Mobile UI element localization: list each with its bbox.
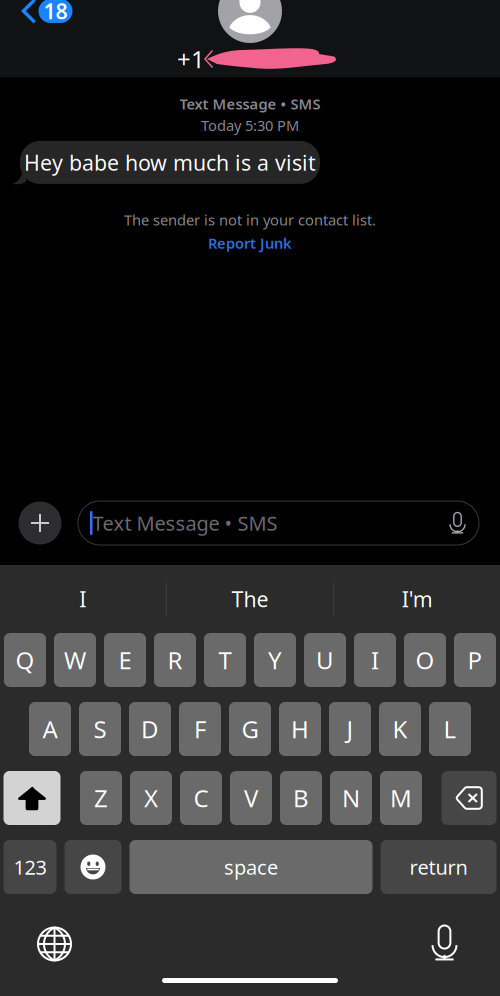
- staticText: Report Junk: [208, 233, 292, 253]
- button[interactable]: V: [230, 771, 272, 825]
- button[interactable]: I'm: [334, 565, 500, 633]
- button[interactable]: Text Message • SMS: [78, 501, 479, 545]
- staticText: The sender is not in your contact list.: [124, 210, 376, 229]
- staticText: Q: [15, 644, 34, 676]
- staticText: I: [371, 644, 379, 676]
- button[interactable]: C: [180, 771, 222, 825]
- button[interactable]: return: [380, 840, 496, 894]
- button[interactable]: Y: [254, 633, 296, 687]
- button[interactable]: F: [179, 702, 221, 756]
- staticText: R: [167, 644, 182, 676]
- button[interactable]: O: [404, 633, 446, 687]
- button[interactable]: I: [354, 633, 396, 687]
- staticText: 123: [13, 854, 46, 880]
- button[interactable]: Back, 18 unread messages: [21, 0, 72, 24]
- button[interactable]: K: [379, 702, 421, 756]
- button[interactable]: Report Junk: [208, 233, 292, 253]
- staticText: Z: [94, 782, 108, 814]
- staticText: A: [42, 713, 57, 745]
- staticText: G: [241, 713, 258, 745]
- button[interactable]: A: [29, 702, 71, 756]
- staticText: Today 5:30 PM: [201, 115, 299, 135]
- button[interactable]: H: [279, 702, 321, 756]
- staticText: Y: [268, 644, 282, 676]
- staticText: S: [93, 713, 106, 745]
- button[interactable]: Switch keyboard: [28, 917, 81, 970]
- button[interactable]: Emoji: [64, 840, 121, 894]
- button[interactable]: Dictate: [422, 915, 466, 970]
- button[interactable]: P: [454, 633, 496, 687]
- staticText: U: [316, 644, 334, 676]
- button[interactable]: space: [129, 840, 372, 894]
- button[interactable]: J: [329, 702, 371, 756]
- staticText: space: [224, 854, 278, 880]
- staticText: The: [231, 585, 268, 613]
- button[interactable]: U: [304, 633, 346, 687]
- staticText: Text Message • SMS: [92, 510, 277, 536]
- button[interactable]: Z: [80, 771, 122, 825]
- button[interactable]: M: [380, 771, 422, 825]
- button[interactable]: Shift: [3, 771, 60, 825]
- staticText: 18: [43, 0, 67, 25]
- staticText: I'm: [402, 585, 433, 613]
- staticText: I: [79, 585, 86, 613]
- button[interactable]: W: [54, 633, 96, 687]
- staticText: F: [194, 713, 206, 745]
- button[interactable]: E: [104, 633, 146, 687]
- staticText: return: [409, 854, 467, 880]
- staticText: Text Message • SMS: [179, 94, 320, 113]
- staticText: C: [193, 782, 208, 814]
- button[interactable]: T: [204, 633, 246, 687]
- button[interactable]: N: [330, 771, 372, 825]
- staticText: H: [291, 713, 309, 745]
- staticText: X: [144, 782, 158, 814]
- button[interactable]: B: [280, 771, 322, 825]
- button[interactable]: I: [0, 565, 166, 633]
- button[interactable]: Add attachment: [16, 499, 64, 547]
- staticText: K: [392, 713, 407, 745]
- button[interactable]: Q: [4, 633, 46, 687]
- staticText: O: [415, 644, 434, 676]
- button[interactable]: Delete: [441, 771, 496, 825]
- staticText: W: [64, 644, 86, 676]
- staticText: T: [218, 644, 231, 676]
- button[interactable]: G: [229, 702, 271, 756]
- staticText: E: [118, 644, 131, 676]
- button[interactable]: R: [154, 633, 196, 687]
- staticText: D: [141, 713, 159, 745]
- staticText: M: [390, 782, 412, 814]
- staticText: Hey babe how much is a visit: [24, 148, 316, 177]
- button[interactable]: L: [429, 702, 471, 756]
- staticText: P: [467, 644, 482, 676]
- staticText: J: [346, 713, 353, 745]
- button[interactable]: S: [79, 702, 121, 756]
- button[interactable]: 123: [3, 840, 56, 894]
- staticText: L: [443, 713, 456, 745]
- staticText: N: [342, 782, 360, 814]
- button[interactable]: The: [167, 565, 333, 633]
- staticText: +1: [177, 43, 205, 75]
- staticText: V: [244, 782, 258, 814]
- staticText: B: [293, 782, 309, 814]
- button[interactable]: X: [130, 771, 172, 825]
- button[interactable]: D: [129, 702, 171, 756]
